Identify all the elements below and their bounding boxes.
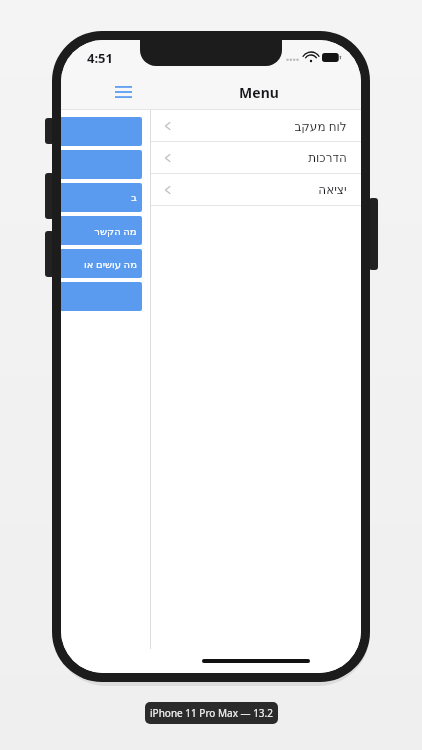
button[interactable]: Menu item [61, 150, 142, 179]
button[interactable]: מה עושים או [61, 249, 142, 278]
button[interactable]: יציאה [151, 174, 361, 205]
button[interactable]: מה הקשר [61, 216, 142, 245]
button[interactable]: לוח מעקב [151, 110, 361, 141]
staticText: 4:51 [87, 49, 113, 67]
staticText: Menu [239, 83, 279, 102]
staticText: מה עושים או [84, 257, 137, 271]
staticText: iPhone 11 Pro Max — 13.2 [150, 706, 273, 720]
staticText: לוח מעקב [294, 118, 347, 134]
button[interactable]: Open menu [109, 78, 137, 106]
staticText: ב [131, 192, 137, 204]
button[interactable]: ב [61, 183, 142, 212]
button[interactable]: הדרכות [151, 142, 361, 173]
staticText: הדרכות [308, 151, 347, 165]
button[interactable]: Menu item [61, 117, 142, 146]
staticText: מה הקשר [94, 224, 137, 238]
staticText: יציאה [318, 183, 347, 197]
button[interactable]: Menu item [61, 282, 142, 311]
